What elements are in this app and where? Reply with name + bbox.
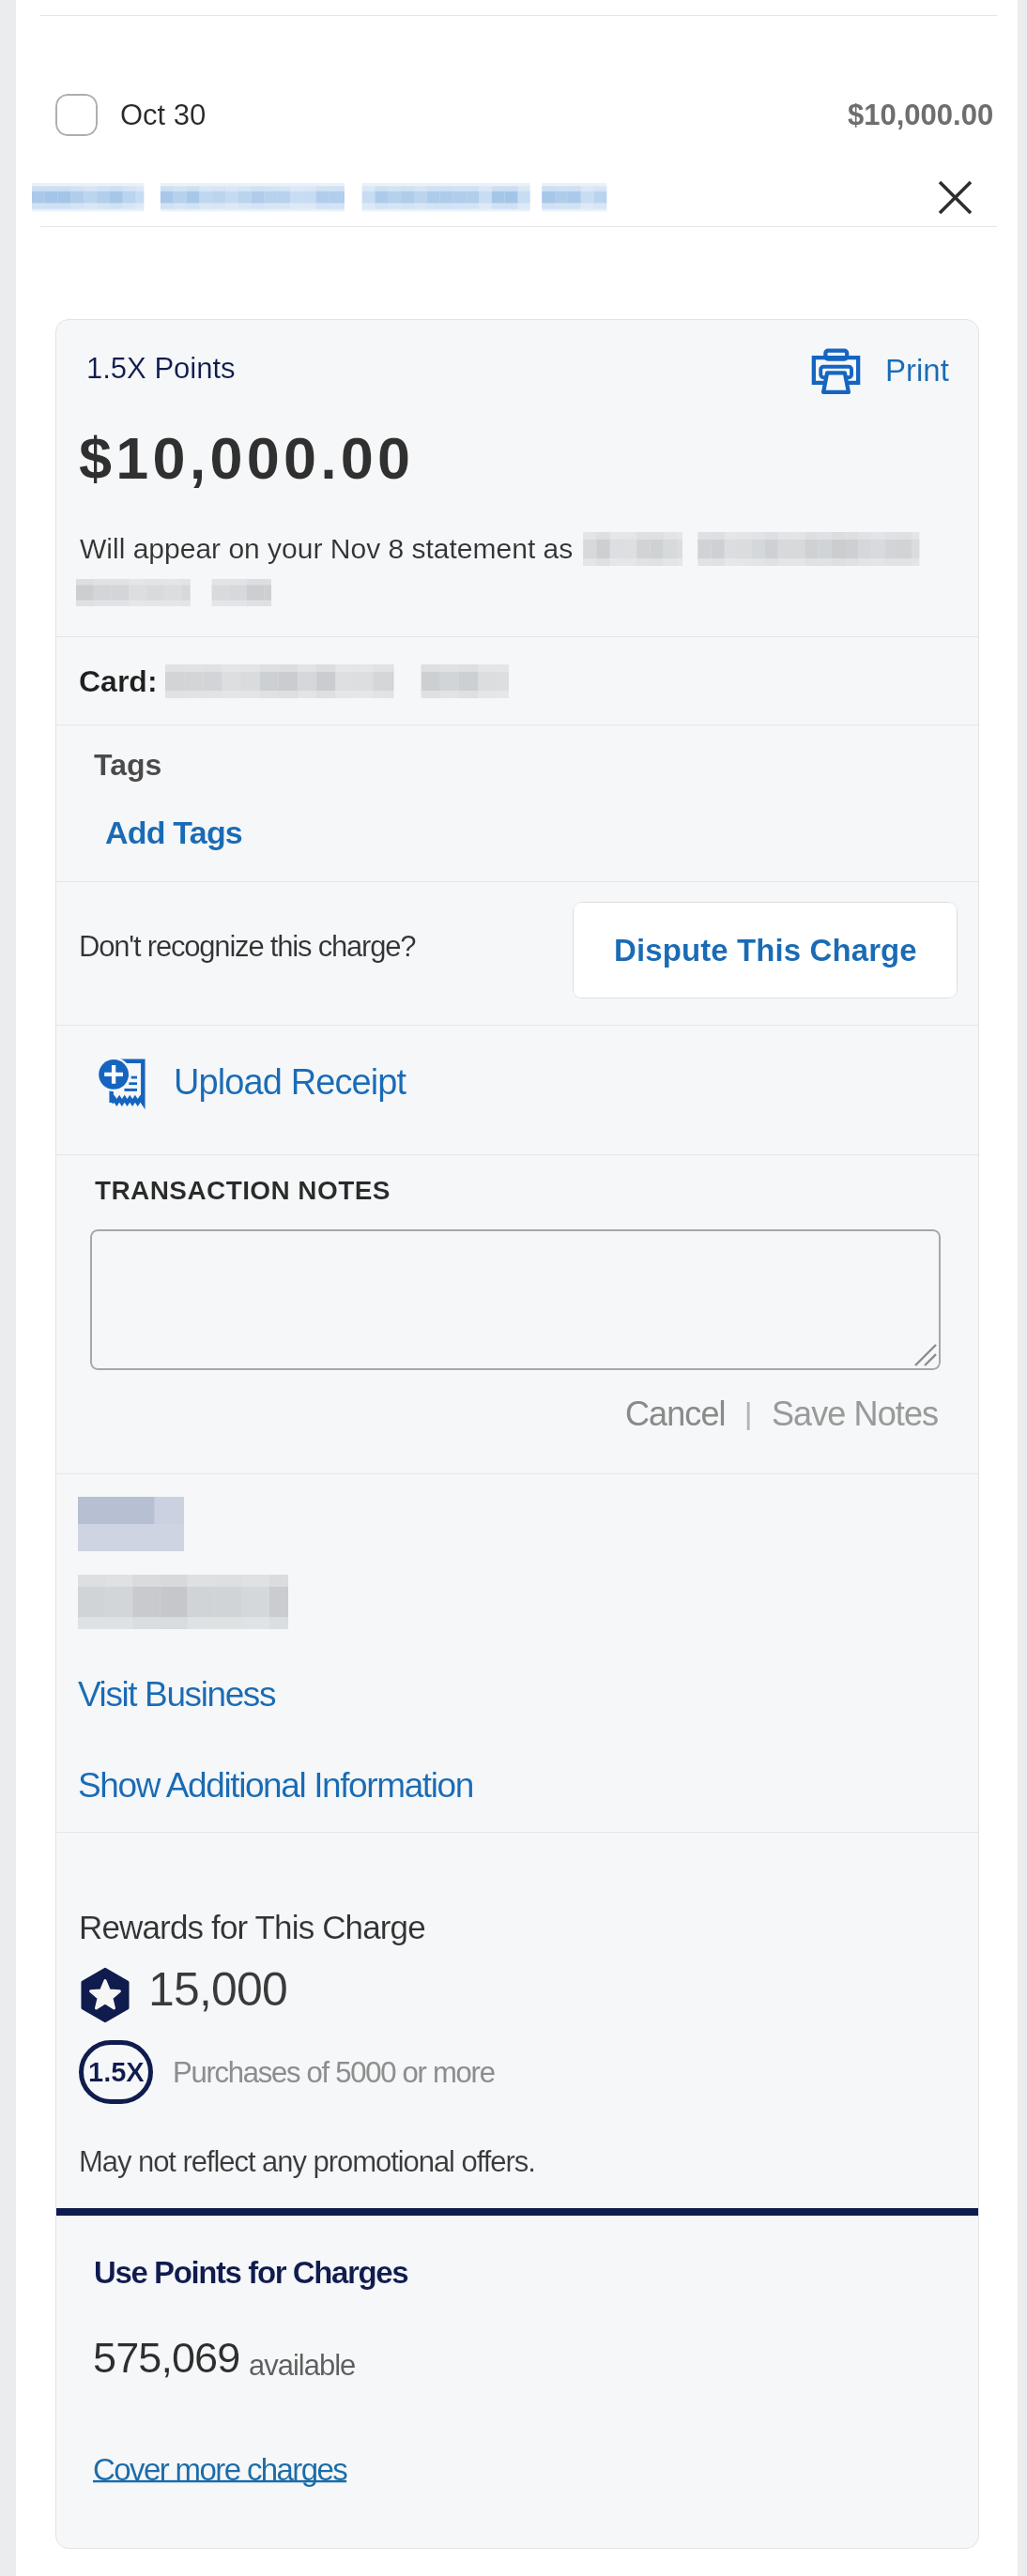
button[interactable]: Visit Business [70, 1669, 284, 1719]
staticText: available [249, 2349, 356, 2382]
staticText: Oct 30 [120, 99, 207, 131]
button[interactable] [90, 1229, 941, 1370]
staticText: | [744, 1396, 753, 1430]
staticText: $10,000.00 [79, 425, 415, 491]
staticText: 575,069 [93, 2334, 240, 2381]
staticText: Cancel [625, 1395, 726, 1432]
button[interactable]: Show Additional Information [70, 1761, 481, 1810]
staticText: Use Points for Charges [94, 2255, 408, 2290]
staticText: TRANSACTION NOTES [95, 1176, 391, 1205]
staticText: 15,000 [148, 1963, 288, 2016]
button[interactable]: Add Tags [94, 812, 253, 853]
staticText: May not reflect any promotional offers. [79, 2145, 535, 2178]
staticText: Don't recognize this charge? [79, 930, 416, 963]
button[interactable]: Cover more charges [85, 2447, 355, 2492]
staticText: Dispute This Charge [614, 933, 917, 968]
staticText: $10,000.00 [848, 99, 994, 131]
staticText: Add Tags [105, 815, 242, 850]
button[interactable]: Dispute This Charge [573, 902, 958, 998]
staticText: Card: [79, 664, 158, 698]
staticText: 1.5X [88, 2057, 145, 2087]
staticText: Cover more charges [93, 2452, 347, 2487]
staticText: Save Notes [772, 1395, 939, 1432]
button[interactable]: Close [925, 167, 985, 227]
staticText: Print [885, 353, 949, 388]
staticText: Will appear on your Nov 8 statement as [80, 533, 574, 565]
button[interactable]: Save Notes [772, 1395, 939, 1432]
button[interactable]: Print [818, 342, 958, 395]
staticText: 1.5X Points [86, 352, 236, 385]
button[interactable]: Upload Receipt [70, 1044, 425, 1120]
button[interactable]: Select transaction [55, 94, 98, 136]
staticText: Purchases of 5000 or more [173, 2056, 495, 2089]
staticText: Visit Business [78, 1675, 276, 1714]
staticText: Upload Receipt [174, 1062, 406, 1102]
button[interactable]: Cancel [625, 1395, 726, 1432]
staticText: Tags [94, 748, 162, 782]
staticText: Show Additional Information [78, 1766, 473, 1805]
staticText: Rewards for This Charge [79, 1909, 425, 1945]
